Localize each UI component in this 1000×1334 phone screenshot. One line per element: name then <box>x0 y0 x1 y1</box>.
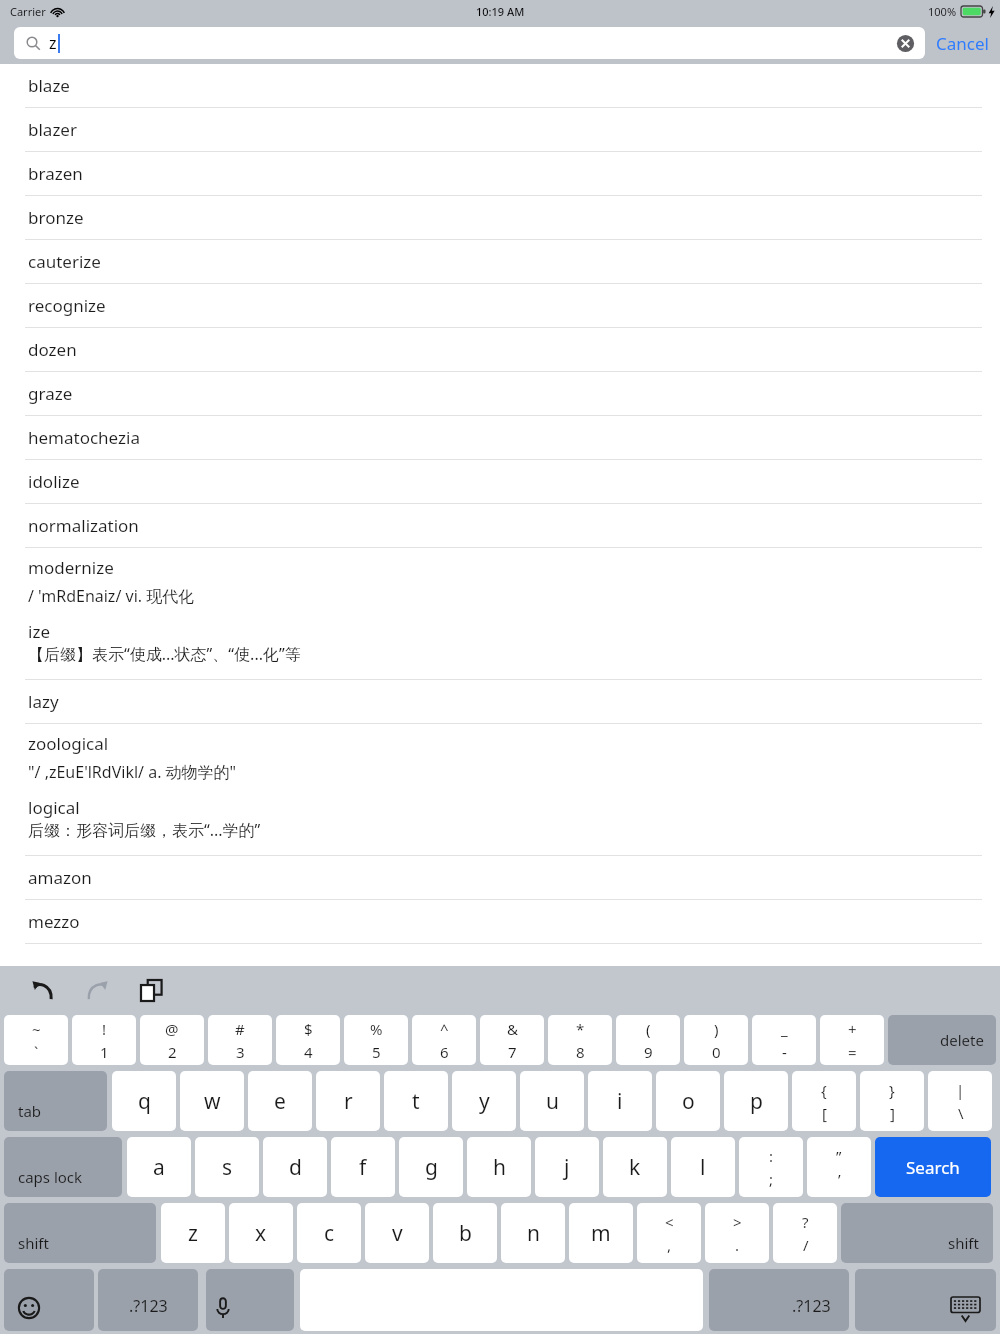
staticText: 【后缀】表示“使成...状态”、“使...化”等 <box>28 643 301 665</box>
button[interactable]: n <box>501 1203 565 1263</box>
button[interactable]: w <box>180 1071 244 1131</box>
button[interactable]: h <box>467 1137 531 1197</box>
button[interactable]: k <box>603 1137 667 1197</box>
button[interactable]: hematochezia <box>0 416 1000 460</box>
staticText: .?123 <box>129 1295 168 1317</box>
button[interactable]: i <box>588 1071 652 1131</box>
staticText: a <box>153 1153 165 1182</box>
button[interactable]: _ <box>752 1015 816 1065</box>
button[interactable]: ” <box>807 1137 871 1197</box>
button[interactable]: .?123 <box>709 1269 849 1331</box>
button[interactable]: { <box>792 1071 856 1131</box>
button[interactable]: graze <box>0 372 1000 416</box>
button[interactable]: y <box>452 1071 516 1131</box>
staticText: normalization <box>28 514 139 537</box>
staticText: hematochezia <box>28 426 140 449</box>
staticText: / <box>803 1235 809 1255</box>
button[interactable]: ( <box>616 1015 680 1065</box>
button[interactable]: & <box>480 1015 544 1065</box>
staticText: r <box>344 1087 353 1116</box>
staticText: { <box>821 1080 827 1100</box>
button[interactable]: Emoji keyboard <box>4 1269 94 1331</box>
button[interactable]: + <box>820 1015 884 1065</box>
button[interactable]: zoological <box>0 724 1000 856</box>
button[interactable]: modernize <box>0 548 1000 680</box>
staticText: * <box>576 1019 585 1039</box>
button[interactable]: v <box>365 1203 429 1263</box>
button[interactable]: ? <box>773 1203 837 1263</box>
staticText: blaze <box>28 74 70 97</box>
staticText: f <box>359 1153 367 1182</box>
button[interactable]: blaze <box>0 64 1000 108</box>
button[interactable]: recognize <box>0 284 1000 328</box>
button[interactable]: t <box>384 1071 448 1131</box>
button[interactable]: ! <box>72 1015 136 1065</box>
staticText: ! <box>102 1019 107 1039</box>
button[interactable]: blazer <box>0 108 1000 152</box>
staticText: .?123 <box>792 1295 831 1317</box>
button[interactable]: z <box>161 1203 225 1263</box>
button[interactable]: | <box>928 1071 992 1131</box>
button[interactable]: b <box>433 1203 497 1263</box>
button[interactable]: delete <box>888 1015 996 1065</box>
button[interactable]: tab <box>4 1071 107 1131</box>
button[interactable]: Cancel <box>936 32 989 55</box>
button[interactable]: Undo <box>24 971 62 1009</box>
button[interactable]: g <box>399 1137 463 1197</box>
button[interactable]: d <box>263 1137 327 1197</box>
button[interactable]: > <box>705 1203 769 1263</box>
button[interactable]: s <box>195 1137 259 1197</box>
button[interactable]: Paste <box>132 971 170 1009</box>
button[interactable]: dozen <box>0 328 1000 372</box>
button[interactable]: r <box>316 1071 380 1131</box>
button[interactable]: cauterize <box>0 240 1000 284</box>
button[interactable]: Search <box>875 1137 991 1197</box>
button[interactable]: shift <box>4 1203 156 1263</box>
button[interactable]: lazy <box>0 680 1000 724</box>
button[interactable]: idolize <box>0 460 1000 504</box>
staticText: ) <box>714 1019 719 1039</box>
button[interactable]: Redo <box>78 971 116 1009</box>
button[interactable]: < <box>637 1203 701 1263</box>
button[interactable]: z <box>14 27 925 59</box>
button[interactable]: ~ <box>4 1015 68 1065</box>
button[interactable]: f <box>331 1137 395 1197</box>
button[interactable]: } <box>860 1071 924 1131</box>
button[interactable]: brazen <box>0 152 1000 196</box>
staticText: mezzo <box>28 910 80 933</box>
button[interactable]: caps lock <box>4 1137 122 1197</box>
button[interactable]: Dictation <box>206 1269 294 1331</box>
button[interactable]: normalization <box>0 504 1000 548</box>
button[interactable]: x <box>229 1203 293 1263</box>
button[interactable]: amazon <box>0 856 1000 900</box>
button[interactable]: Hide keyboard <box>855 1269 996 1331</box>
staticText: @ <box>165 1019 179 1039</box>
button[interactable]: ^ <box>412 1015 476 1065</box>
button[interactable]: % <box>344 1015 408 1065</box>
button[interactable]: ) <box>684 1015 748 1065</box>
button[interactable]: j <box>535 1137 599 1197</box>
button[interactable]: Clear search text <box>895 33 916 54</box>
button[interactable]: shift <box>841 1203 993 1263</box>
button[interactable]: e <box>248 1071 312 1131</box>
button[interactable]: l <box>671 1137 735 1197</box>
button[interactable]: m <box>569 1203 633 1263</box>
button[interactable]: u <box>520 1071 584 1131</box>
button[interactable]: : <box>739 1137 803 1197</box>
button[interactable]: p <box>724 1071 788 1131</box>
button[interactable]: # <box>208 1015 272 1065</box>
button[interactable]: .?123 <box>98 1269 198 1331</box>
staticText: 1 <box>100 1042 109 1062</box>
button[interactable]: q <box>112 1071 176 1131</box>
button[interactable]: bronze <box>0 196 1000 240</box>
button[interactable]: a <box>127 1137 191 1197</box>
button[interactable]: * <box>548 1015 612 1065</box>
staticText: z <box>49 32 57 54</box>
button[interactable]: mezzo <box>0 900 1000 944</box>
button[interactable]: @ <box>140 1015 204 1065</box>
staticText: v <box>392 1219 403 1248</box>
button[interactable]: $ <box>276 1015 340 1065</box>
button[interactable]: o <box>656 1071 720 1131</box>
button[interactable]: c <box>297 1203 361 1263</box>
